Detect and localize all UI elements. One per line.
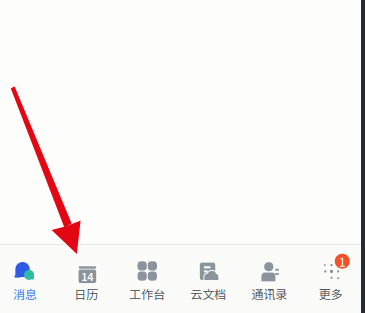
staticText: 14: [81, 269, 93, 284]
button[interactable]: 通讯录: [239, 245, 300, 313]
button[interactable]: 14: [56, 245, 117, 313]
staticText: 消息: [13, 285, 37, 302]
staticText: 通讯录: [251, 285, 287, 302]
staticText: 工作台: [129, 285, 165, 302]
button[interactable]: 工作台: [117, 245, 178, 313]
staticText: 云文档: [190, 285, 226, 302]
staticText: 更多: [319, 285, 343, 302]
staticText: 1: [339, 252, 346, 270]
staticText: 日历: [74, 285, 98, 302]
button[interactable]: 云文档: [178, 245, 239, 313]
button[interactable]: 消息: [0, 245, 56, 313]
button[interactable]: 1: [300, 245, 361, 313]
